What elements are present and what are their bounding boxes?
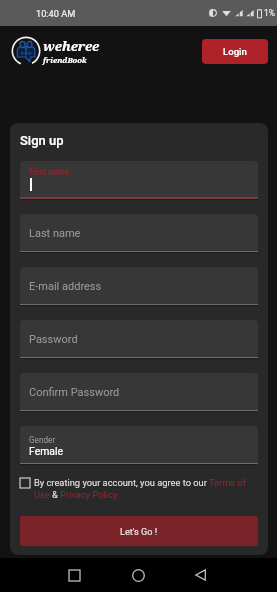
button[interactable]: Recent apps bbox=[56, 558, 92, 592]
button[interactable]: Password bbox=[20, 320, 258, 359]
staticText: E-mail address bbox=[29, 280, 102, 293]
staticText: First name bbox=[29, 167, 70, 177]
button[interactable]: Back bbox=[182, 558, 218, 592]
button[interactable]: Gender bbox=[20, 426, 258, 465]
staticText: 1% bbox=[264, 8, 276, 18]
button[interactable]: First name bbox=[20, 161, 258, 200]
staticText: Female bbox=[29, 445, 63, 457]
button[interactable]: Last name bbox=[20, 214, 258, 253]
staticText: Gender bbox=[29, 435, 56, 445]
button[interactable]: Login bbox=[202, 39, 268, 64]
button[interactable]: Home bbox=[120, 558, 156, 592]
staticText: Login bbox=[223, 46, 247, 57]
staticText: 10:40 AM bbox=[36, 8, 76, 19]
staticText: Sign up bbox=[20, 133, 64, 148]
staticText: By creating your account, you agree to o… bbox=[34, 477, 258, 500]
staticText: Last name bbox=[29, 227, 81, 240]
staticText: Confirm Password bbox=[29, 386, 120, 399]
staticText: friendBook bbox=[43, 55, 87, 65]
button[interactable]: Let's Go ! bbox=[20, 516, 258, 546]
staticText: weheree bbox=[43, 37, 100, 55]
button[interactable]: E-mail address bbox=[20, 267, 258, 306]
button[interactable]: Confirm Password bbox=[20, 373, 258, 412]
button[interactable]: By creating your account, you agree to o… bbox=[20, 477, 258, 500]
staticText: Let's Go ! bbox=[120, 526, 158, 537]
staticText: Password bbox=[29, 333, 78, 346]
